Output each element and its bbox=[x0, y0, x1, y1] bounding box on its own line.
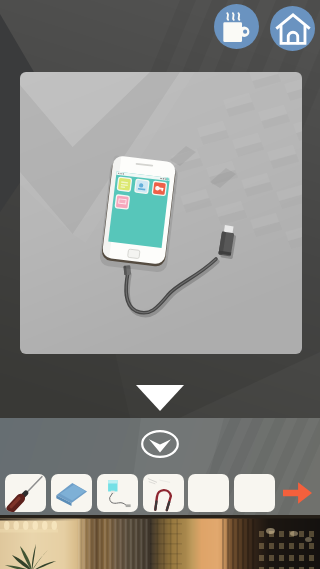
button[interactable]: Zoom out bbox=[136, 385, 184, 411]
button[interactable]: Inventory slot 3 bbox=[97, 474, 138, 512]
button[interactable]: Inventory slot 6 bbox=[234, 474, 275, 512]
button[interactable]: Inventory slot 1 bbox=[5, 474, 46, 512]
button[interactable]: Hints bbox=[214, 4, 259, 49]
button[interactable]: More items bbox=[283, 481, 312, 505]
button[interactable]: Inventory slot 2 bbox=[51, 474, 92, 512]
button[interactable]: Look down bbox=[141, 430, 179, 458]
button[interactable]: Inventory slot 5 bbox=[188, 474, 229, 512]
button[interactable]: Home bbox=[270, 6, 315, 51]
button[interactable]: Inventory slot 4 bbox=[143, 474, 184, 512]
